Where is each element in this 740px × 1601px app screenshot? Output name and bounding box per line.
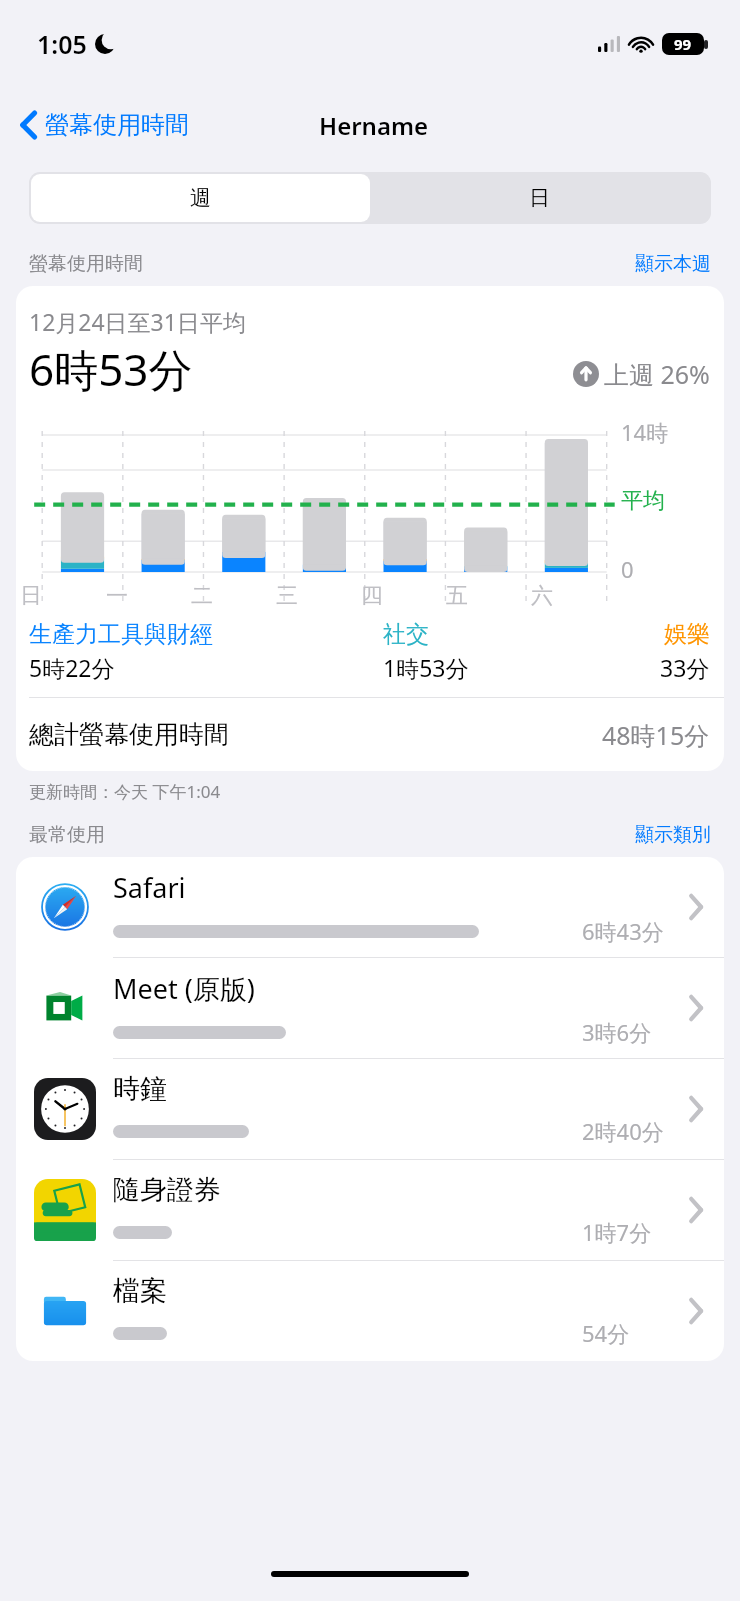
staticText: 更新時間：今天 下午1:04: [29, 780, 221, 803]
staticText: 48時15分: [602, 718, 710, 752]
staticText: 2時40分: [582, 1116, 664, 1146]
other: 開啟 隨身證券 詳細資料: [668, 1160, 724, 1260]
staticText: 二: [191, 582, 213, 610]
staticText: 一: [106, 582, 128, 610]
staticText: 1時7分: [582, 1217, 652, 1247]
staticText: 5時22分: [29, 652, 115, 683]
button[interactable]: 日: [370, 174, 709, 222]
staticText: Hername: [319, 109, 429, 142]
button[interactable]: 顯示本週: [635, 252, 711, 276]
button[interactable]: 顯示類別: [635, 823, 711, 847]
staticText: 12月24日至31日平均: [29, 306, 246, 337]
staticText: Meet (原版): [113, 970, 255, 1007]
staticText: 時鐘: [113, 1072, 167, 1106]
staticText: 0: [621, 554, 634, 584]
staticText: 6時53分: [29, 339, 193, 399]
staticText: 四: [361, 582, 383, 610]
staticText: 上週 26%: [604, 357, 710, 391]
button[interactable]: 時鐘: [16, 1059, 724, 1159]
staticText: 檔案: [113, 1274, 167, 1308]
other: 開啟 Meet (原版) 詳細資料: [668, 958, 724, 1058]
staticText: 三: [276, 582, 298, 610]
staticText: 生產力工具與財經: [29, 620, 213, 649]
other: 開啟 Safari 詳細資料: [668, 857, 724, 957]
staticText: 顯示本週: [635, 252, 711, 276]
staticText: 3時6分: [582, 1017, 652, 1047]
staticText: 螢幕使用時間: [29, 252, 143, 276]
staticText: 99: [674, 34, 692, 54]
other: 開啟 時鐘 詳細資料: [668, 1059, 724, 1159]
staticText: 平均: [621, 487, 665, 515]
staticText: 社交: [383, 620, 429, 649]
staticText: 週: [190, 185, 211, 211]
button[interactable]: 檔案: [16, 1261, 724, 1361]
staticText: 日: [529, 185, 550, 211]
staticText: 六: [531, 582, 553, 610]
staticText: 總計螢幕使用時間: [29, 719, 229, 750]
staticText: 6時43分: [582, 916, 664, 946]
other: 開啟 檔案 詳細資料: [668, 1261, 724, 1361]
staticText: 娛樂: [664, 620, 710, 649]
staticText: Safari: [113, 869, 186, 906]
staticText: 1:05: [37, 27, 87, 61]
staticText: 螢幕使用時間: [45, 110, 189, 140]
button[interactable]: 總計螢幕使用時間: [16, 698, 724, 771]
staticText: 54分: [582, 1318, 630, 1348]
button[interactable]: 週: [31, 174, 370, 222]
button[interactable]: Meet (原版): [16, 958, 724, 1058]
staticText: 顯示類別: [635, 823, 711, 847]
button[interactable]: 螢幕使用時間: [14, 104, 195, 146]
staticText: 33分: [660, 652, 710, 683]
staticText: 最常使用: [29, 823, 105, 847]
staticText: 五: [446, 582, 468, 610]
staticText: 1時53分: [383, 652, 469, 683]
staticText: 隨身證券: [113, 1173, 221, 1207]
staticText: 14時: [621, 417, 669, 447]
button[interactable]: 隨身證券: [16, 1160, 724, 1260]
button[interactable]: Safari: [16, 857, 724, 957]
staticText: 日: [20, 582, 42, 610]
